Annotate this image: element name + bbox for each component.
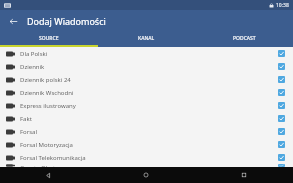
staticText: Dodaj Wiadomości (27, 15, 106, 27)
button[interactable]: Back (4, 12, 22, 30)
staticText: Dziennik (20, 63, 276, 71)
button[interactable]: Back (0, 167, 97, 183)
button[interactable]: Toggle Forsal Telekomunikacja (276, 152, 287, 163)
button[interactable]: Toggle Express ilustrowany (276, 100, 287, 111)
staticText: Forsal Motoryzacja (20, 141, 276, 149)
staticText: KANAL (138, 35, 155, 42)
staticText: Gazeta Olsztyn (20, 164, 276, 167)
staticText: SOURCE (39, 35, 59, 42)
button[interactable]: Toggle Dla Polski (276, 48, 287, 59)
button[interactable]: Toggle Fakt (276, 113, 287, 124)
staticText: Dziennik Wschodni (20, 89, 276, 97)
button[interactable]: Forsal Telekomunikacja (0, 151, 293, 164)
button[interactable]: PODCAST (195, 32, 293, 45)
button[interactable]: Toggle Forsal Motoryzacja (276, 139, 287, 150)
button[interactable]: Toggle Dziennik Wschodni (276, 87, 287, 98)
button[interactable]: KANAL (97, 32, 195, 45)
button[interactable]: Toggle Dziennik polski 24 (276, 74, 287, 85)
staticText: Fakt (20, 115, 276, 123)
button[interactable]: Toggle Gazeta Olsztyn (276, 164, 287, 167)
staticText: Express ilustrowany (20, 102, 276, 110)
button[interactable]: SOURCE (0, 32, 97, 45)
button[interactable]: Toggle Dziennik (276, 61, 287, 72)
button[interactable]: Toggle Forsal (276, 126, 287, 137)
button[interactable]: Recents (195, 167, 293, 183)
staticText: Dziennik polski 24 (20, 76, 276, 84)
button[interactable]: Dziennik Wschodni (0, 86, 293, 99)
button[interactable]: Forsal (0, 125, 293, 138)
button[interactable]: Dziennik polski 24 (0, 73, 293, 86)
staticText: Forsal (20, 128, 276, 136)
button[interactable]: Dla Polski (0, 47, 293, 60)
staticText: 10:38 (276, 2, 289, 9)
button[interactable]: Dziennik (0, 60, 293, 73)
button[interactable]: Express ilustrowany (0, 99, 293, 112)
button[interactable]: Forsal Motoryzacja (0, 138, 293, 151)
staticText: Dla Polski (20, 50, 276, 58)
button[interactable]: Home (97, 167, 195, 183)
button[interactable]: Fakt (0, 112, 293, 125)
staticText: Forsal Telekomunikacja (20, 154, 276, 162)
staticText: PODCAST (233, 35, 256, 42)
button[interactable]: Gazeta Olsztyn (0, 164, 293, 167)
